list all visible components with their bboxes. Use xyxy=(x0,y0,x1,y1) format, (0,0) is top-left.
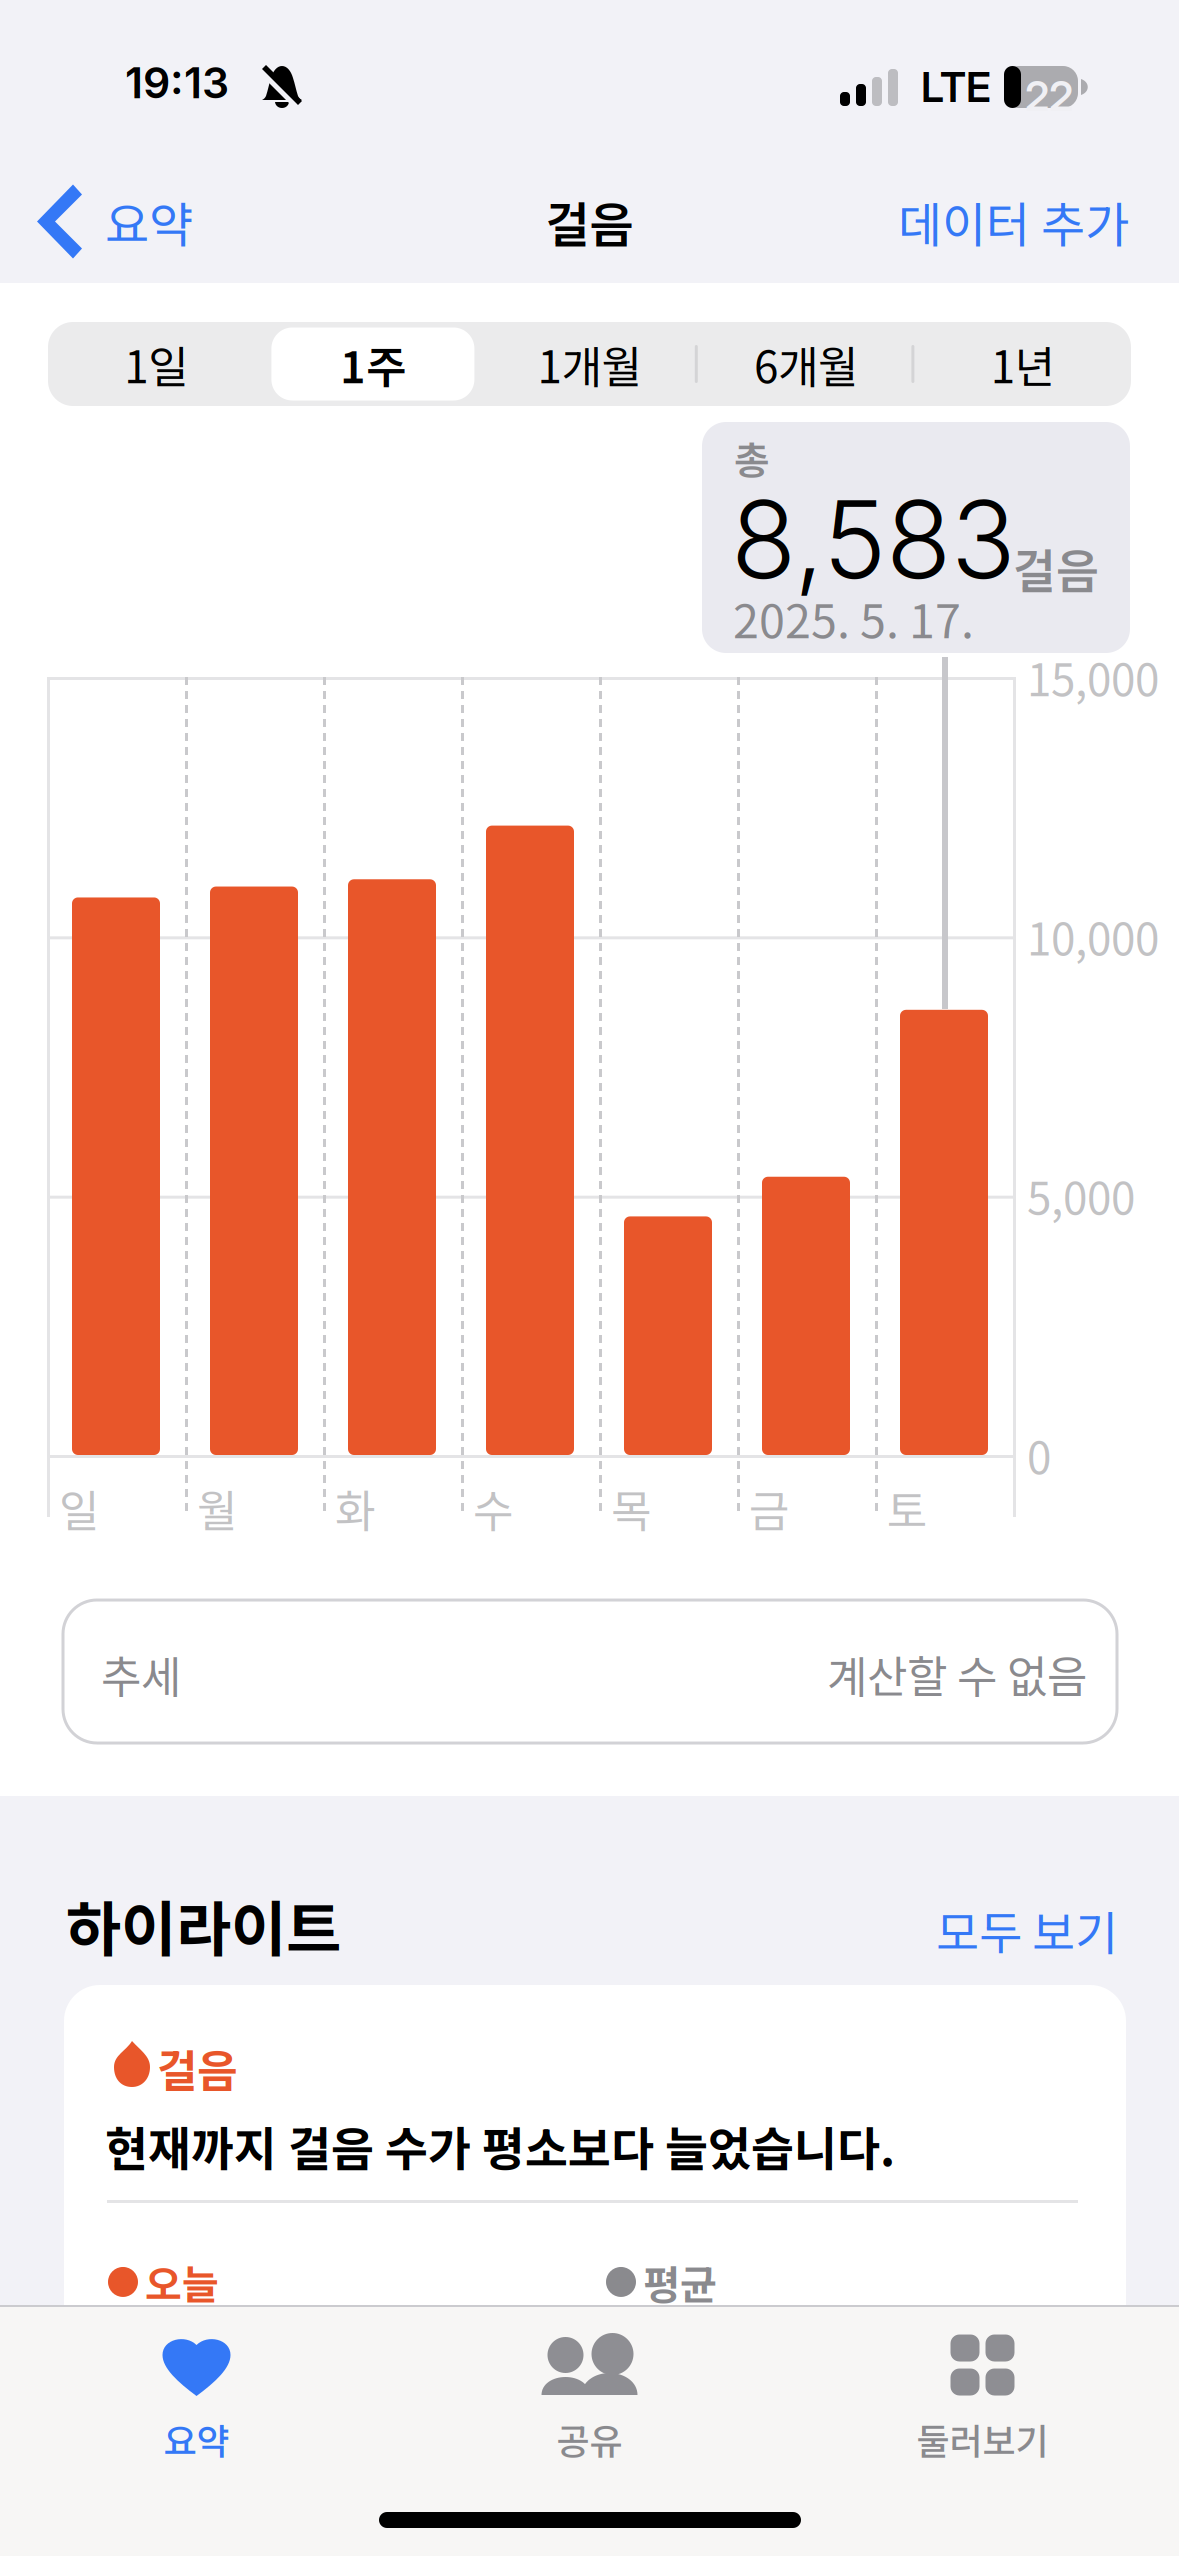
staticText: 둘러보기 xyxy=(916,2413,1048,2465)
staticText: 8,583 xyxy=(731,475,1016,604)
staticText: 1년 xyxy=(991,332,1055,396)
staticText: 2025. 5. 17. xyxy=(733,584,974,652)
button[interactable]: 1일 xyxy=(48,322,265,406)
staticText: 6개월 xyxy=(754,332,858,396)
staticText: 오늘 xyxy=(145,2253,219,2311)
staticText: 모두 보기 xyxy=(936,1896,1118,1964)
button[interactable]: 요약 xyxy=(0,165,193,277)
staticText: 월 xyxy=(197,1476,237,1540)
staticText: 19:13 xyxy=(125,57,229,109)
staticText: 현재까지 걸음 수가 평소보다 늘었습니다. xyxy=(105,2112,895,2180)
staticText: 걸음 xyxy=(545,187,633,256)
staticText: 15,000 xyxy=(1027,645,1159,709)
staticText: 1일 xyxy=(124,332,188,396)
button[interactable]: 공유 xyxy=(393,2331,786,2491)
button[interactable]: 요약 xyxy=(0,2331,393,2491)
staticText: 10,000 xyxy=(1027,904,1159,968)
staticText: 금 xyxy=(749,1476,789,1540)
staticText: 하이라이트 xyxy=(66,1882,341,1969)
staticText: 계산할 수 없음 xyxy=(827,1642,1087,1706)
staticText: 일 xyxy=(59,1476,99,1540)
staticText: 요약 xyxy=(105,187,193,256)
staticText: 공유 xyxy=(556,2413,622,2465)
staticText: 요약 xyxy=(163,2413,229,2465)
button[interactable]: 둘러보기 xyxy=(786,2331,1179,2491)
staticText: 수 xyxy=(473,1476,513,1540)
staticText: 평균 xyxy=(643,2253,717,2311)
staticText: 목 xyxy=(611,1476,651,1540)
button[interactable]: 1년 xyxy=(914,322,1131,406)
staticText: 1주 xyxy=(340,332,406,396)
staticText: 화 xyxy=(335,1476,375,1540)
staticText: 걸음 xyxy=(157,2036,237,2100)
staticText: 0 xyxy=(1027,1423,1051,1487)
staticText: 걸음 xyxy=(1013,534,1099,602)
staticText: LTE xyxy=(921,62,991,112)
staticText: 5,000 xyxy=(1027,1164,1135,1227)
staticText: 토 xyxy=(887,1476,927,1540)
button[interactable]: 모두 보기 xyxy=(924,1886,1130,1974)
staticText: 총 xyxy=(734,430,770,486)
button[interactable]: 데이터 추가 xyxy=(898,169,1179,274)
staticText: 추세 xyxy=(101,1642,181,1706)
button[interactable]: 1개월 xyxy=(481,322,698,406)
button[interactable]: 6개월 xyxy=(698,322,914,406)
button[interactable]: 1주 xyxy=(265,322,481,406)
staticText: 데이터 추가 xyxy=(898,187,1129,256)
staticText: 22 xyxy=(1025,71,1073,121)
staticText: 1개월 xyxy=(537,332,641,396)
